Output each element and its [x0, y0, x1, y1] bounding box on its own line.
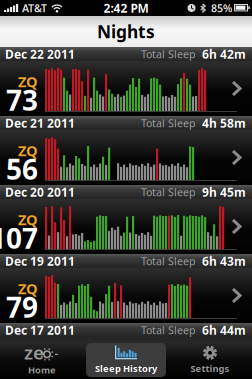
staticText: Total Sleep — [141, 323, 196, 337]
staticText: Dec 20 2011 — [5, 184, 75, 200]
button[interactable]: ze — [0, 341, 84, 379]
staticText: AT&T — [22, 1, 47, 15]
button[interactable]: Settings — [168, 341, 252, 379]
staticText: ZQ — [18, 141, 38, 160]
staticText: Dec 21 2011 — [5, 115, 75, 131]
staticText: 85% — [211, 1, 232, 15]
staticText: 4h 58m — [202, 115, 246, 131]
staticText: 6h 43m — [202, 253, 246, 269]
staticText: 73 — [6, 81, 38, 119]
staticText: Dec 22 2011 — [5, 46, 75, 62]
staticText: Dec 19 2011 — [5, 253, 75, 269]
staticText: Home — [28, 364, 56, 376]
staticText: Dec 17 2011 — [5, 322, 75, 338]
button[interactable]: Dec 22 2011 — [0, 47, 252, 116]
button[interactable]: Dec 17 2011 — [0, 323, 252, 341]
staticText: Total Sleep — [141, 185, 196, 199]
staticText: 6h 42m — [202, 46, 246, 62]
staticText: ZQ — [18, 279, 38, 298]
staticText: 107 — [0, 219, 38, 257]
staticText: Sleep History — [95, 362, 157, 375]
staticText: Total Sleep — [141, 47, 196, 61]
staticText: Settings — [190, 362, 229, 375]
staticText: 2:42 PM — [103, 0, 148, 16]
button[interactable]: Sleep History — [84, 341, 168, 379]
staticText: 79 — [6, 288, 38, 326]
staticText: 9h 45m — [202, 184, 246, 200]
button[interactable]: Dec 20 2011 — [0, 185, 252, 254]
staticText: Total Sleep — [141, 254, 196, 268]
staticText: Nights — [97, 20, 155, 43]
staticText: ze — [24, 340, 44, 365]
staticText: Total Sleep — [141, 116, 196, 130]
staticText: ZQ — [18, 72, 38, 91]
staticText: ZQ — [18, 210, 38, 229]
button[interactable]: Dec 21 2011 — [0, 116, 252, 185]
staticText: 56 — [6, 150, 38, 188]
button[interactable]: Dec 19 2011 — [0, 254, 252, 323]
staticText: 6h 44m — [202, 322, 246, 338]
